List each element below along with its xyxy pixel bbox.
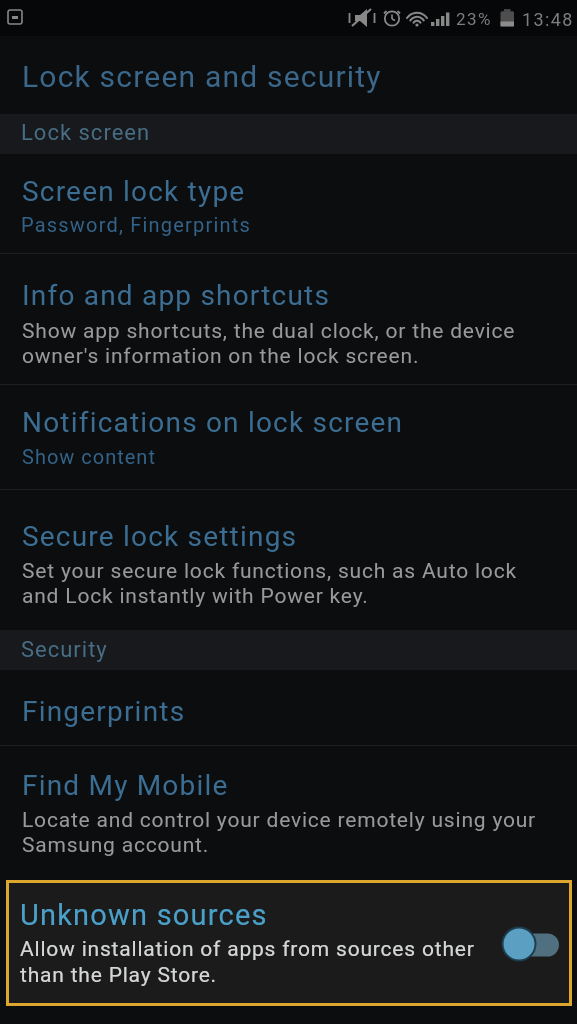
staticText: Notifications on lock screen — [22, 406, 404, 439]
staticText: Security — [21, 637, 108, 663]
staticText: Show content — [22, 445, 156, 468]
staticText: owner's information on the lock screen. — [22, 344, 420, 369]
button[interactable]: Unknown sources — [6, 880, 572, 1006]
staticText: Samsung account. — [22, 833, 210, 858]
button[interactable]: Screen lock type — [0, 160, 577, 253]
staticText: 23% — [456, 9, 493, 29]
button[interactable]: Info and app shortcuts — [0, 254, 577, 384]
staticText: Show app shortcuts, the dual clock, or t… — [22, 319, 516, 344]
staticText: Password, Fingerprints — [21, 213, 251, 236]
button[interactable]: Fingerprints — [0, 671, 577, 745]
staticText: and Lock instantly with Power key. — [22, 584, 369, 609]
staticText: than the Play Store. — [20, 963, 217, 988]
button[interactable]: Find My Mobile — [0, 746, 577, 879]
staticText: Lock screen and security — [22, 59, 382, 94]
staticText: Set your secure lock functions, such as … — [22, 559, 517, 584]
button[interactable]: Notifications on lock screen — [0, 385, 577, 489]
staticText: Unknown sources — [20, 898, 268, 932]
staticText: Lock screen — [21, 120, 151, 146]
staticText: Fingerprints — [22, 695, 186, 728]
staticText: Info and app shortcuts — [22, 279, 331, 312]
button[interactable]: Secure lock settings — [0, 490, 577, 630]
staticText: 13:48 — [522, 9, 574, 30]
staticText: Secure lock settings — [22, 520, 298, 553]
staticText: Allow installation of apps from sources … — [20, 937, 475, 962]
staticText: Locate and control your device remotely … — [22, 808, 537, 833]
staticText: Find My Mobile — [22, 769, 229, 802]
staticText: Screen lock type — [22, 175, 246, 208]
